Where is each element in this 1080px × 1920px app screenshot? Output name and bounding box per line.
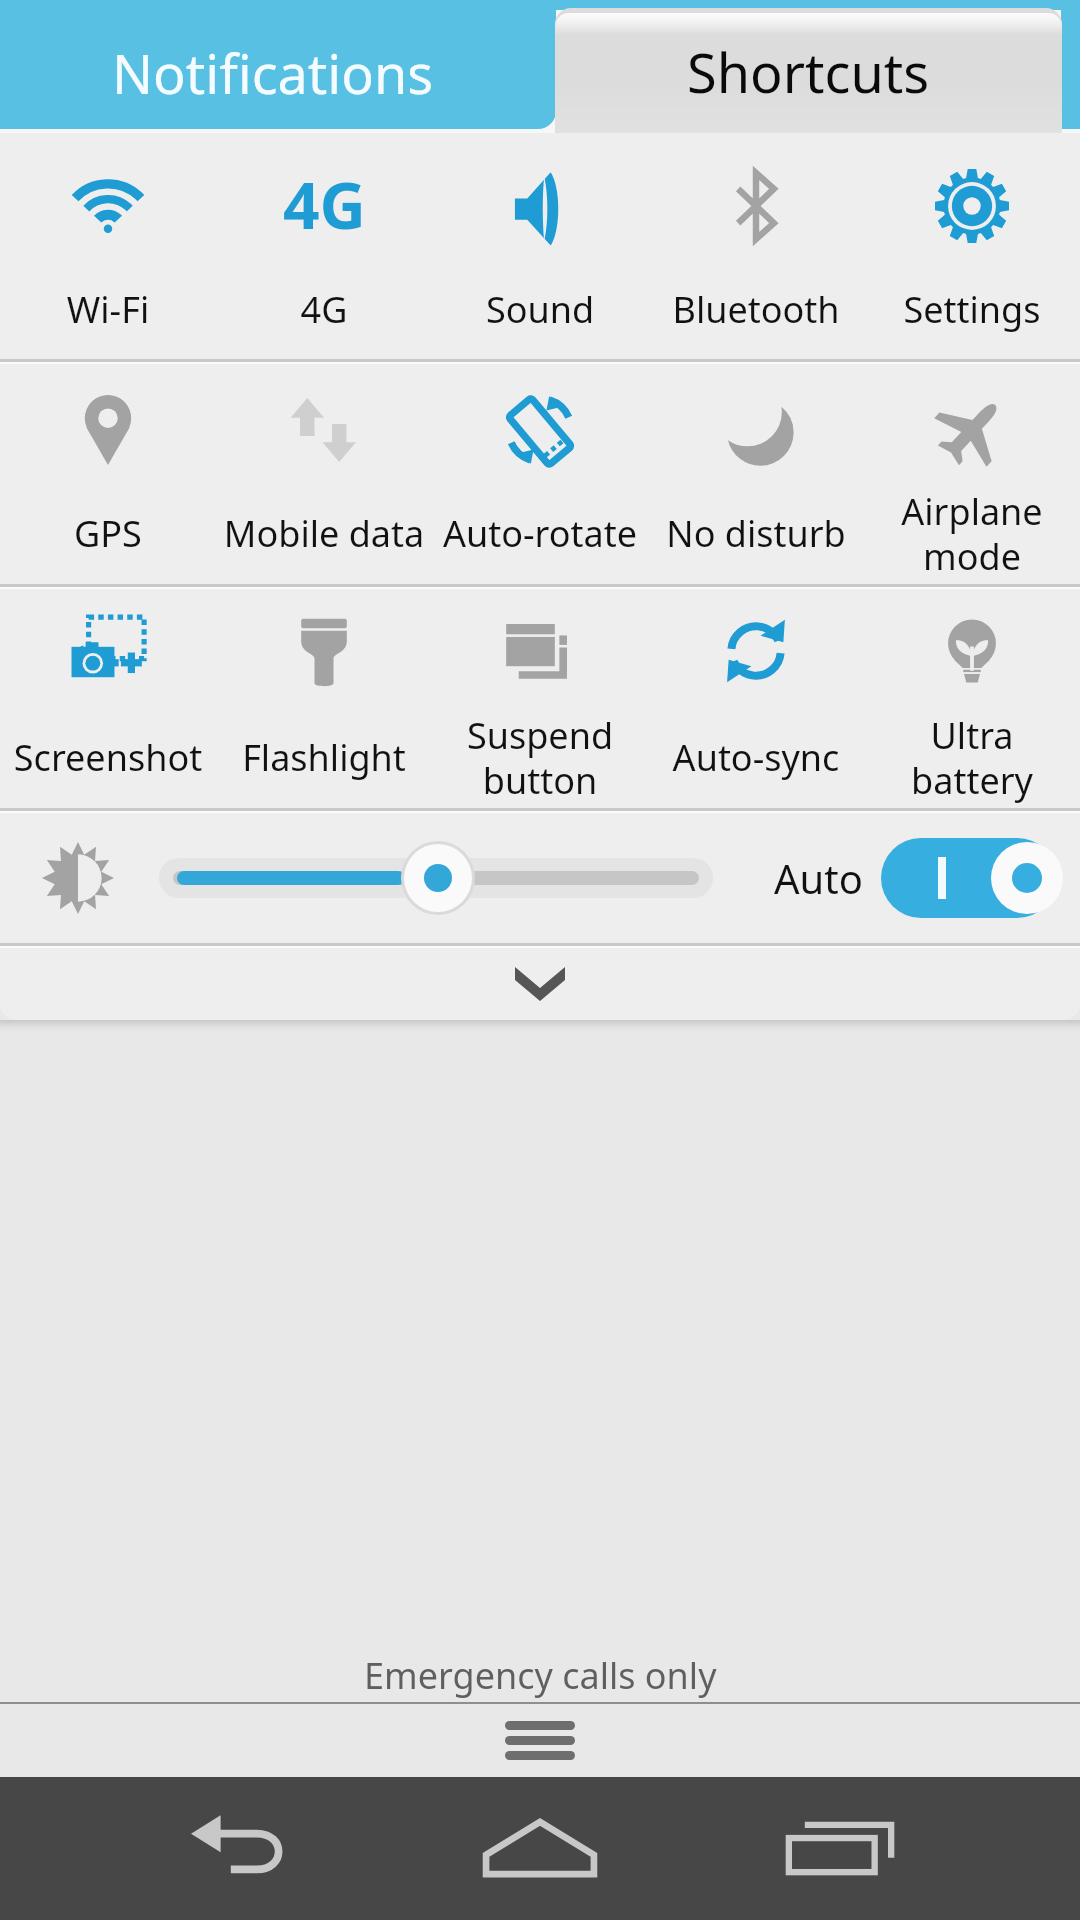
staticText: Bluetooth bbox=[648, 285, 864, 334]
staticText: Sound bbox=[432, 285, 648, 334]
staticText: Shortcuts bbox=[687, 35, 930, 109]
staticText: 4G bbox=[283, 161, 366, 237]
staticText: Airplane mode bbox=[864, 487, 1080, 580]
button[interactable]: Screenshot bbox=[0, 589, 216, 808]
staticText: 4G bbox=[216, 285, 432, 334]
staticText: Screenshot bbox=[0, 733, 216, 782]
button[interactable]: Mobile data bbox=[216, 364, 432, 584]
button[interactable]: Shortcuts bbox=[555, 8, 1062, 133]
staticText: Ultra battery bbox=[864, 711, 1080, 804]
staticText: Auto-sync bbox=[648, 733, 864, 782]
button[interactable]: Auto-sync bbox=[648, 589, 864, 808]
staticText: Emergency calls only bbox=[364, 1651, 717, 1700]
button[interactable]: Notifications bbox=[0, 0, 556, 129]
button[interactable]: Airplane mode bbox=[864, 364, 1080, 584]
button[interactable]: Back bbox=[130, 1777, 352, 1920]
button[interactable]: Suspend button bbox=[432, 589, 648, 808]
button[interactable]: GPS bbox=[0, 364, 216, 584]
button[interactable] bbox=[159, 835, 713, 921]
button[interactable]: No disturb bbox=[648, 364, 864, 584]
button[interactable]: Expand bbox=[0, 948, 1080, 1020]
button[interactable]: Recent apps bbox=[735, 1777, 950, 1920]
staticText: Mobile data bbox=[216, 509, 432, 558]
staticText: Flashlight bbox=[216, 733, 432, 782]
button[interactable]: Flashlight bbox=[216, 589, 432, 808]
button[interactable]: Bluetooth bbox=[648, 133, 864, 359]
staticText: Wi-Fi bbox=[0, 285, 216, 334]
staticText: Notifications bbox=[112, 36, 434, 110]
button[interactable]: Sound bbox=[432, 133, 648, 359]
staticText: GPS bbox=[0, 509, 216, 558]
button[interactable]: Ultra battery bbox=[864, 589, 1080, 808]
button[interactable]: Wi-Fi bbox=[0, 133, 216, 359]
staticText: Auto bbox=[774, 851, 863, 905]
staticText: Settings bbox=[864, 285, 1080, 334]
button[interactable]: Drag handle bbox=[0, 1704, 1080, 1777]
button[interactable]: Settings bbox=[864, 133, 1080, 359]
staticText: No disturb bbox=[648, 509, 864, 558]
button[interactable]: 4G bbox=[216, 133, 432, 359]
staticText: Auto-rotate bbox=[432, 509, 648, 558]
button[interactable]: Auto brightness toggle bbox=[881, 838, 1057, 918]
button[interactable]: Home bbox=[430, 1777, 650, 1920]
button[interactable]: Auto-rotate bbox=[432, 364, 648, 584]
staticText: Suspend button bbox=[432, 711, 648, 804]
